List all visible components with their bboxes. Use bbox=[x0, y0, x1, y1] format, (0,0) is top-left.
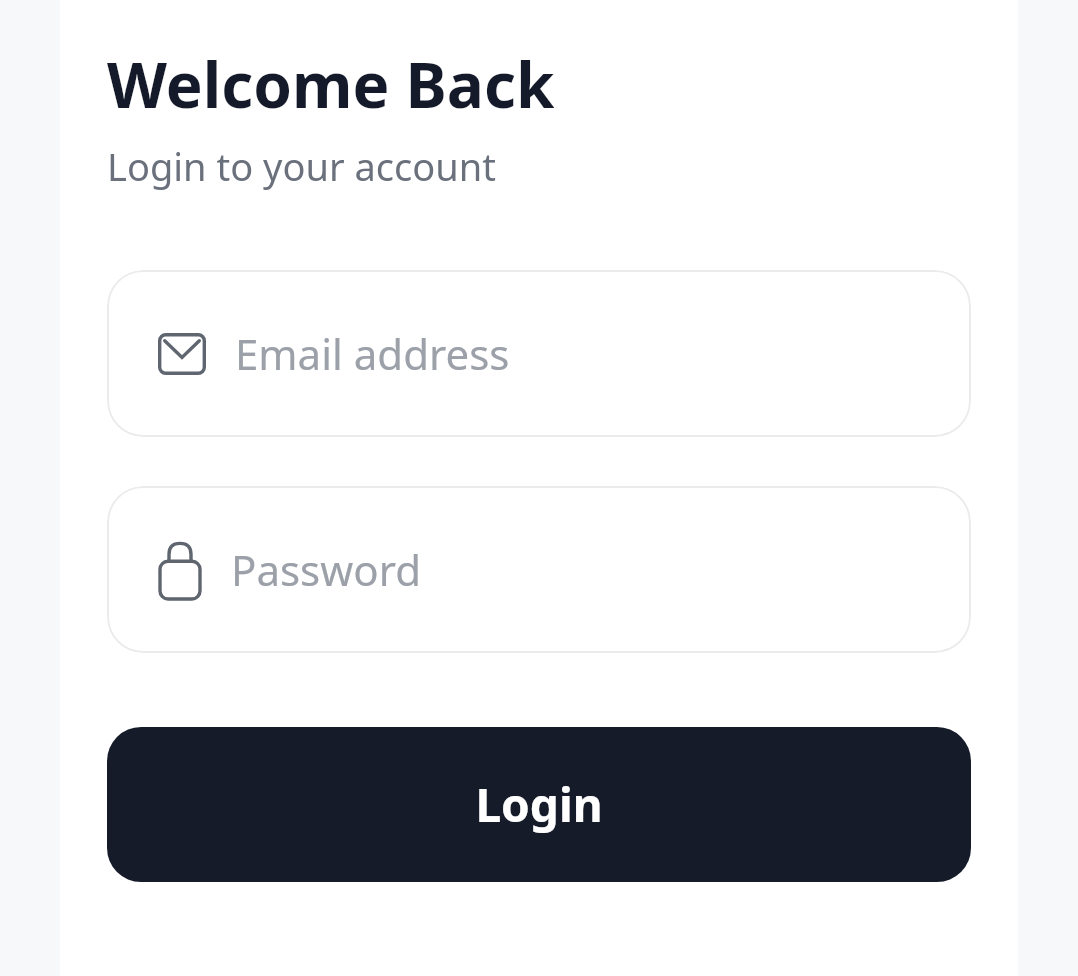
staticText: Password bbox=[231, 541, 421, 598]
staticText: Welcome Back bbox=[107, 42, 555, 126]
staticText: Login to your account bbox=[107, 140, 496, 192]
button[interactable]: Password bbox=[107, 486, 971, 653]
button[interactable]: Login bbox=[107, 727, 971, 882]
button[interactable]: Email bbox=[107, 270, 971, 437]
staticText: Email address bbox=[235, 325, 510, 382]
staticText: Login bbox=[475, 773, 603, 836]
other: Password bbox=[158, 539, 202, 601]
other: Email bbox=[158, 333, 206, 375]
